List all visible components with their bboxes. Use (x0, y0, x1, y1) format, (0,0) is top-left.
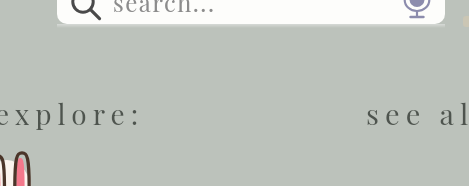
staticText: search... (113, 0, 216, 18)
button[interactable]: Search (57, 0, 445, 24)
other: Search (57, 0, 445, 24)
button[interactable]: Bunny collection (0, 148, 34, 186)
button[interactable]: see all (366, 94, 469, 133)
other: Voice search (57, 0, 445, 24)
button[interactable]: explore: (0, 95, 145, 132)
staticText: explore: (0, 95, 145, 132)
staticText: see all (366, 94, 469, 133)
